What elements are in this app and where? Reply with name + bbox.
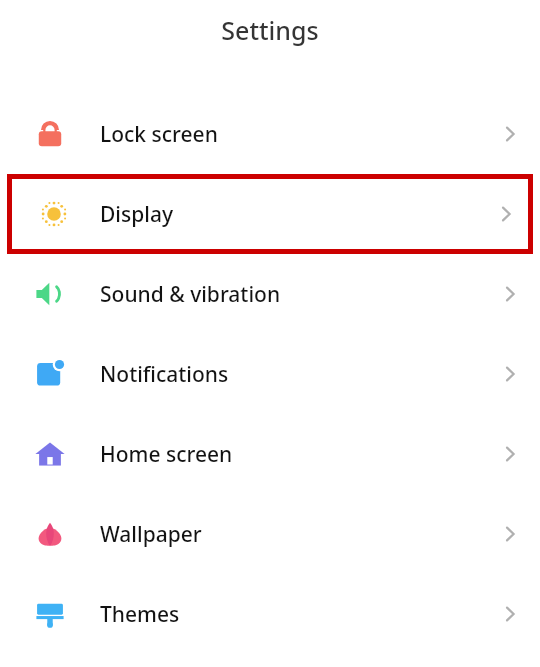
button[interactable]: Display [7,174,533,254]
staticText: Wallpaper [100,520,202,549]
staticText: Notifications [100,360,229,389]
staticText: Themes [100,600,180,629]
staticText: Lock screen [100,120,218,149]
button[interactable]: Notifications [0,334,540,414]
button[interactable]: Wallpaper [0,494,540,574]
staticText: Home screen [100,440,233,469]
staticText: Display [100,200,174,229]
staticText: Settings [221,13,319,47]
button[interactable]: Lock screen [0,94,540,174]
button[interactable]: Home screen [0,414,540,494]
button[interactable]: Themes [0,574,540,654]
button[interactable]: Sound & vibration [0,254,540,334]
staticText: Sound & vibration [100,280,281,309]
